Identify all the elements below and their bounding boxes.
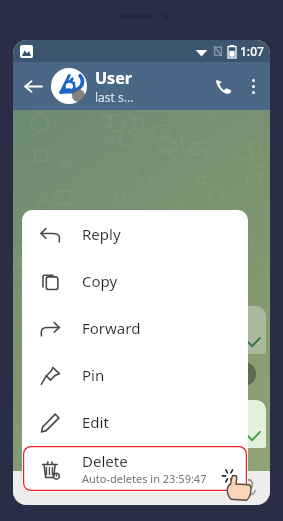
staticText: User: [95, 67, 132, 89]
staticText: Reply: [82, 224, 121, 244]
button[interactable]: Delete: [22, 445, 248, 492]
button[interactable]: Pin: [22, 351, 248, 398]
button[interactable]: Forward: [22, 304, 248, 351]
button[interactable]: User: [95, 67, 206, 105]
button[interactable]: Copy: [22, 257, 248, 304]
button[interactable]: More options: [240, 62, 266, 110]
button[interactable]: Reply: [22, 210, 248, 257]
staticText: Copy: [82, 271, 118, 291]
staticText: last s...: [95, 89, 134, 105]
staticText: Auto-deletes in 23:59:47: [82, 471, 207, 486]
button[interactable]: Record voice message: [232, 471, 266, 505]
staticText: 1:07: [240, 43, 264, 59]
button[interactable]: Back: [13, 62, 51, 110]
staticText: Edit: [82, 412, 109, 432]
staticText: Pin: [82, 365, 105, 385]
staticText: Forward: [82, 318, 141, 338]
button[interactable]: Edit: [22, 398, 248, 445]
button[interactable]: Call: [206, 62, 240, 110]
staticText: Delete: [82, 451, 128, 471]
